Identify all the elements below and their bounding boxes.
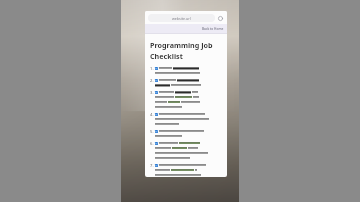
staticText: 3. xyxy=(150,90,155,96)
button[interactable]: Completed xyxy=(155,79,158,82)
staticText: Back to Home xyxy=(202,27,224,31)
button[interactable]: 7. xyxy=(150,163,223,177)
staticText: 7. xyxy=(150,163,155,169)
button[interactable]: 5. xyxy=(150,129,223,138)
button[interactable]: Completed xyxy=(155,67,158,70)
button[interactable]: Completed xyxy=(155,164,158,167)
staticText: 4. xyxy=(150,112,155,118)
button[interactable]: 6. xyxy=(150,141,223,160)
button[interactable]: Completed xyxy=(155,142,158,145)
button[interactable]: Completed xyxy=(155,113,158,116)
button[interactable]: 2. xyxy=(150,78,223,87)
button[interactable]: Completed xyxy=(155,91,158,94)
button[interactable]: Completed xyxy=(155,130,158,133)
staticText: website.url xyxy=(172,16,191,21)
staticText: 1. xyxy=(150,66,155,72)
button[interactable]: 4. xyxy=(150,112,223,126)
staticText: Programming Job xyxy=(150,40,213,50)
button[interactable]: 3. xyxy=(150,90,223,109)
button[interactable]: Reload xyxy=(217,15,224,22)
button[interactable]: Address bar xyxy=(148,14,215,22)
staticText: 2. xyxy=(150,78,155,84)
staticText: 5. xyxy=(150,129,155,135)
staticText: 6. xyxy=(150,141,155,147)
button[interactable]: Back to Home xyxy=(202,27,224,31)
button[interactable]: 1. xyxy=(150,66,223,75)
staticText: Checklist xyxy=(150,51,183,61)
